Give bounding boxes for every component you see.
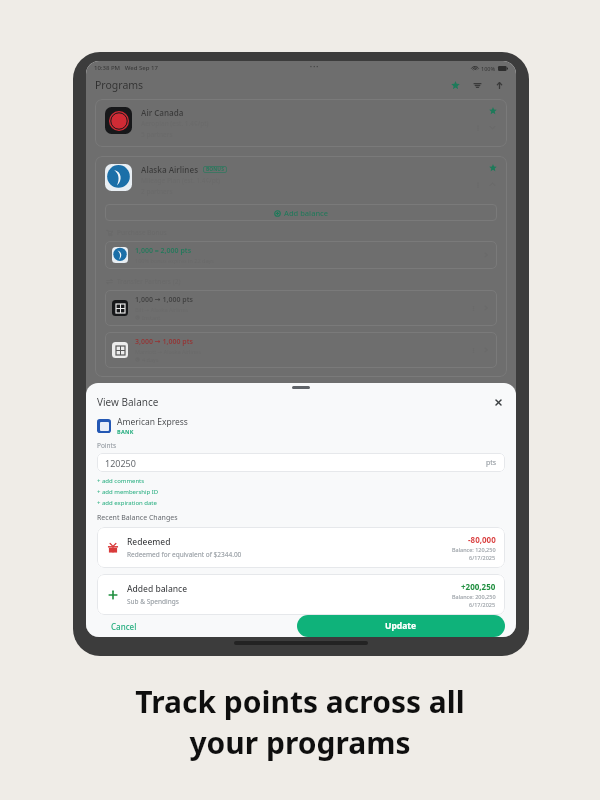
staticText: 6/17/2025 <box>469 601 496 608</box>
staticText: BONUS <box>206 166 224 173</box>
staticText: 3,000 → 1,000 pts <box>135 337 193 347</box>
button[interactable]: Air Canada <box>95 99 507 147</box>
button[interactable]: Redeemed <box>97 527 505 568</box>
staticText: 120250 <box>105 457 136 469</box>
staticText: 1,000 → 1,000 pts <box>135 295 193 305</box>
button[interactable]: Sort <box>492 78 507 93</box>
button[interactable]: + add comments <box>97 477 145 485</box>
staticText: Redeemed <box>127 536 171 548</box>
staticText: Add balance <box>284 208 329 218</box>
button[interactable]: + add membership ID <box>97 488 159 496</box>
staticText: 6/17/2025 <box>469 554 496 561</box>
staticText: Cancel <box>111 621 137 631</box>
staticText: Added balance <box>127 583 188 595</box>
staticText: your programs <box>0 722 600 763</box>
staticText: Points <box>97 441 117 450</box>
staticText: 1,000 = 2,000 pts <box>135 246 192 256</box>
staticText: Sub & Spendings <box>127 597 179 606</box>
button[interactable]: 1,000 → 1,000 pts <box>105 290 497 326</box>
button[interactable]: Add balance <box>105 204 497 221</box>
staticText: Update <box>385 620 417 632</box>
staticText: Balance: 200,250 <box>452 593 496 600</box>
staticText: Recent Balance Changes <box>97 513 178 523</box>
staticText: Balance: 120,250 <box>452 546 496 553</box>
button[interactable]: + add expiration date <box>97 499 157 507</box>
button[interactable]: Favorites <box>448 78 463 93</box>
staticText: 100% <box>481 65 496 72</box>
staticText: BANK <box>117 428 134 435</box>
staticText: pts <box>486 458 497 468</box>
button[interactable]: Filter <box>470 78 485 93</box>
staticText: -80,000 <box>468 534 496 545</box>
staticText: +200,250 <box>461 581 496 592</box>
staticText: 10:38 PM Wed Sep 17 <box>94 64 158 72</box>
button[interactable]: 3,000 → 1,000 pts <box>105 332 497 368</box>
staticText: Track points across all <box>0 681 600 722</box>
staticText: American Express <box>117 416 188 428</box>
staticText: View Balance <box>97 395 159 409</box>
button[interactable]: Added balance <box>97 574 505 615</box>
staticText: Alaska Airlines <box>141 164 199 175</box>
staticText: Redeemed for equivalent of $2344.00 <box>127 550 242 559</box>
button[interactable]: Update <box>297 615 505 637</box>
staticText: Programs <box>95 78 144 92</box>
button[interactable]: Cancel <box>97 615 151 637</box>
button[interactable]: Close <box>492 396 505 409</box>
button[interactable]: 1,000 = 2,000 pts <box>105 241 497 269</box>
staticText: • • • <box>310 64 319 71</box>
button[interactable]: 120250 <box>97 453 505 472</box>
staticText: Air Canada <box>141 107 184 118</box>
